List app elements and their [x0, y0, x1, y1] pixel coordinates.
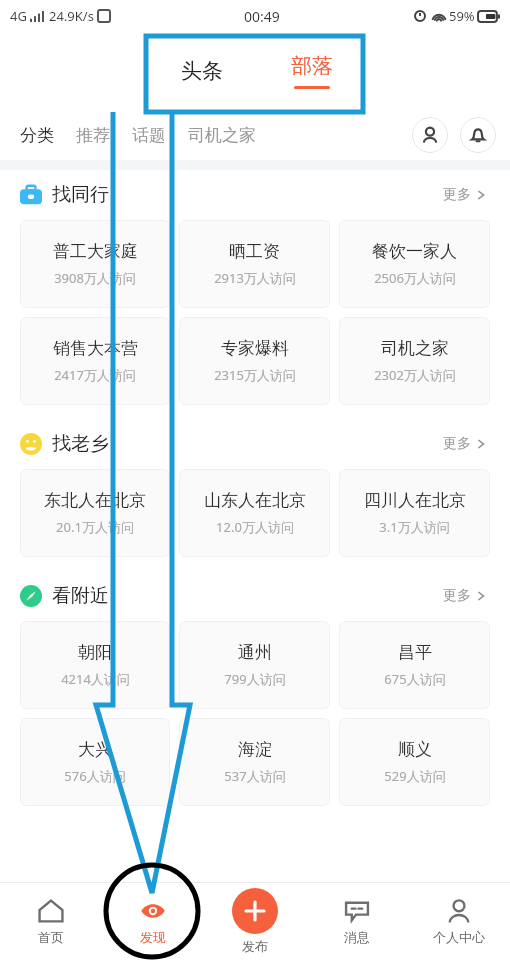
button[interactable]: 朝阳: [20, 621, 170, 709]
button[interactable]: 昌平: [339, 621, 490, 709]
staticText: 529人访问: [384, 767, 446, 785]
staticText: 顺义: [398, 739, 432, 760]
staticText: 4G: [10, 7, 27, 25]
staticText: 2913万人访问: [214, 269, 296, 287]
button[interactable]: 话题: [130, 119, 168, 152]
staticText: 部落: [291, 53, 333, 79]
button[interactable]: 山东人在北京: [179, 469, 330, 557]
staticText: 推荐: [76, 125, 110, 146]
staticText: 576人访问: [64, 767, 126, 785]
staticText: 消息: [344, 929, 370, 945]
staticText: 个人中心: [433, 929, 485, 945]
staticText: 12.0万人访问: [216, 518, 294, 536]
button[interactable]: 销售大本营: [20, 317, 170, 405]
staticText: 头条: [181, 58, 223, 84]
staticText: 分类: [20, 125, 54, 146]
staticText: 2417万人访问: [54, 366, 136, 384]
staticText: 话题: [132, 125, 166, 146]
staticText: 799人访问: [224, 670, 286, 688]
button[interactable]: 消息: [306, 882, 408, 960]
button[interactable]: 通州: [179, 621, 330, 709]
button[interactable]: 更多: [439, 182, 490, 208]
button[interactable]: 餐饮一家人: [339, 220, 490, 308]
staticText: 2506万人访问: [374, 269, 456, 287]
staticText: 24.9K/s: [49, 7, 94, 25]
other: 发布: [232, 888, 278, 934]
button[interactable]: 分类: [18, 119, 56, 152]
staticText: 更多: [443, 587, 471, 605]
staticText: 四川人在北京: [364, 490, 466, 511]
staticText: 司机之家: [381, 338, 449, 359]
staticText: 看附近: [52, 584, 109, 608]
staticText: 20.1万人访问: [56, 518, 134, 536]
button[interactable]: 司机之家: [186, 119, 258, 152]
button[interactable]: 东北人在北京: [20, 469, 170, 557]
staticText: 朝阳: [78, 642, 112, 663]
staticText: 山东人在北京: [204, 490, 306, 511]
staticText: 首页: [38, 929, 64, 945]
staticText: 675人访问: [384, 670, 446, 688]
staticText: 东北人在北京: [44, 490, 146, 511]
staticText: 537人访问: [224, 767, 286, 785]
staticText: 海淀: [238, 739, 272, 760]
button[interactable]: Notifications: [460, 117, 496, 153]
button[interactable]: 晒工资: [179, 220, 330, 308]
button[interactable]: 司机之家: [339, 317, 490, 405]
staticText: 4214人访问: [61, 670, 130, 688]
staticText: 找老乡: [52, 432, 109, 456]
staticText: 晒工资: [229, 241, 280, 262]
staticText: 2302万人访问: [374, 366, 456, 384]
staticText: 找同行: [52, 183, 109, 207]
staticText: 专家爆料: [221, 338, 289, 359]
button[interactable]: 海淀: [179, 718, 330, 806]
staticText: 通州: [238, 642, 272, 663]
staticText: 发现: [140, 929, 166, 945]
button[interactable]: 四川人在北京: [339, 469, 490, 557]
staticText: 59%: [449, 7, 475, 25]
button[interactable]: 更多: [439, 583, 490, 609]
staticText: 更多: [443, 186, 471, 204]
staticText: 昌平: [398, 642, 432, 663]
staticText: 司机之家: [188, 125, 256, 146]
button[interactable]: 发布: [232, 888, 278, 954]
staticText: 3.1万人访问: [379, 518, 450, 536]
button[interactable]: 专家爆料: [179, 317, 330, 405]
staticText: 更多: [443, 435, 471, 453]
button[interactable]: 大兴: [20, 718, 170, 806]
staticText: 00:49: [244, 7, 280, 26]
button[interactable]: 更多: [439, 431, 490, 457]
staticText: 销售大本营: [53, 338, 138, 359]
staticText: 餐饮一家人: [372, 241, 457, 262]
button[interactable]: 发现: [102, 882, 204, 960]
staticText: 2315万人访问: [214, 366, 296, 384]
button[interactable]: 普工大家庭: [20, 220, 170, 308]
staticText: 3908万人访问: [54, 269, 136, 287]
button[interactable]: 头条: [159, 48, 245, 94]
staticText: 普工大家庭: [53, 241, 138, 262]
button[interactable]: Profile: [412, 117, 448, 153]
button[interactable]: 部落: [273, 47, 351, 95]
button[interactable]: 个人中心: [408, 882, 510, 960]
button[interactable]: 推荐: [74, 119, 112, 152]
staticText: 发布: [242, 938, 268, 954]
staticText: 大兴: [78, 739, 112, 760]
button[interactable]: 顺义: [339, 718, 490, 806]
button[interactable]: 首页: [0, 882, 102, 960]
